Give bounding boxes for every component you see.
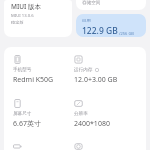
other: 后置相机 bbox=[74, 143, 83, 150]
button[interactable]: 电池容量 bbox=[13, 143, 74, 150]
staticText: 运行内存 bbox=[74, 67, 93, 73]
staticText: 存储空间 bbox=[82, 0, 101, 6]
staticText: 稳定版 bbox=[11, 20, 24, 25]
staticText: 分辨率 bbox=[74, 111, 88, 117]
staticText: MIUI 13.0.6 bbox=[11, 13, 34, 19]
button[interactable]: 屏幕尺寸 bbox=[13, 99, 74, 129]
button[interactable]: 手机型号 bbox=[13, 55, 74, 85]
button[interactable]: 已用 bbox=[76, 14, 146, 37]
staticText: 手机型号 bbox=[13, 67, 32, 73]
staticText: 122.9 GB bbox=[82, 25, 118, 37]
other: 电池容量 bbox=[13, 143, 22, 150]
other: 分辨率 bbox=[74, 99, 83, 108]
staticText: /256 GB bbox=[119, 31, 134, 36]
button[interactable]: MIUI 版本 bbox=[4, 0, 72, 37]
button[interactable]: 后置相机 bbox=[74, 143, 140, 150]
other: 手机型号 bbox=[13, 55, 22, 64]
other: 运行内存 bbox=[74, 55, 83, 64]
staticText: 12.0+3.00 GB bbox=[74, 75, 118, 85]
button[interactable]: 存储空间 bbox=[76, 0, 146, 10]
other: 屏幕尺寸 bbox=[13, 99, 22, 108]
staticText: 已用 bbox=[82, 18, 91, 24]
staticText: 屏幕尺寸 bbox=[13, 111, 32, 117]
staticText: 2400*1080 bbox=[74, 119, 110, 129]
button[interactable]: 运行内存 bbox=[74, 55, 140, 85]
button[interactable]: 分辨率 bbox=[74, 99, 140, 129]
staticText: Redmi K50G bbox=[13, 75, 54, 85]
staticText: 6.67英寸 bbox=[13, 119, 41, 129]
staticText: MIUI 版本 bbox=[11, 2, 42, 11]
